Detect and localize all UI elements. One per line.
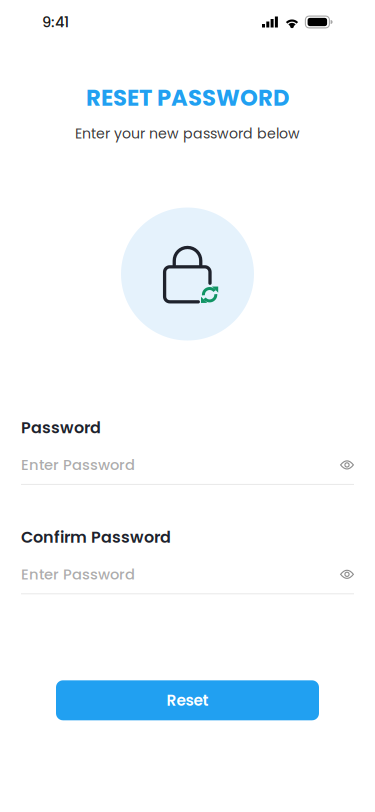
button[interactable]: Enter Password [21,439,354,476]
button[interactable]: Enter Password [21,548,354,585]
staticText: Enter your new password below [75,124,300,143]
staticText: 9:41 [42,12,69,32]
staticText: Reset [166,690,208,711]
staticText: Password [21,416,101,439]
staticText: Enter Password [21,564,135,585]
button[interactable]: Reset [56,680,319,720]
staticText: RESET PASSWORD [86,82,289,114]
staticText: Enter Password [21,455,135,475]
staticText: Confirm Password [21,526,171,548]
